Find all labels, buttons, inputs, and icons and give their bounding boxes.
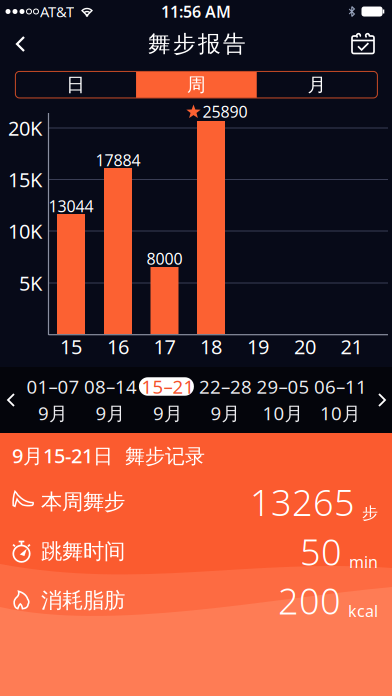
staticText: 本周舞步 [41,489,125,515]
staticText: 周 [187,73,206,96]
staticText: 10K [8,218,42,244]
staticText: 9月15-21日 舞步记录 [12,442,205,469]
staticText: 5K [19,270,42,296]
staticText: 跳舞时间 [41,538,125,565]
staticText: 21 [340,333,362,360]
staticText: 11:56 AM [161,1,231,22]
button[interactable]: 29–05 [254,367,311,433]
staticText: 9月 [153,401,183,425]
staticText: 22–28 [199,374,252,399]
staticText: 月 [307,73,326,96]
staticText: 200 [278,577,341,624]
staticText: 日 [66,73,85,96]
staticText: 步 [362,503,378,523]
button[interactable]: 15–21 [139,367,196,433]
staticText: 08–14 [84,374,137,399]
staticText: 18 [200,333,222,360]
staticText: min [349,551,378,572]
button[interactable]: 01–07 [24,367,81,433]
staticText: 9月 [95,401,125,425]
staticText: 8000 [146,248,182,269]
button[interactable]: Previous weeks [4,390,20,410]
staticText: 06–11 [314,374,367,399]
staticText: 10月 [262,401,303,425]
button[interactable]: 日 [17,71,135,98]
button[interactable]: 06–11 [312,367,369,433]
staticText: 20 [294,333,316,360]
staticText: 13265 [250,478,355,526]
staticText: 25890 [202,101,247,122]
staticText: 20K [8,115,42,141]
staticText: 消耗脂肪 [41,587,125,614]
staticText: 50 [300,528,342,575]
staticText: 17884 [95,149,140,171]
staticText: 29–05 [256,374,309,399]
button[interactable]: 月 [258,71,376,98]
staticText: 9月 [38,401,68,425]
staticText: 13044 [48,195,93,217]
staticText: 17 [153,333,175,360]
staticText: 舞步报告 [148,30,246,58]
staticText: AT&T [40,2,74,21]
staticText: 9月 [210,401,240,425]
staticText: kcal [348,600,378,621]
staticText: 15K [8,166,42,193]
staticText: 10月 [320,401,361,425]
button[interactable]: Back [10,30,44,58]
button[interactable]: 22–28 [197,367,254,433]
button[interactable]: 08–14 [82,367,139,433]
button[interactable]: 周 [136,71,257,98]
button[interactable]: Next weeks [373,390,389,410]
staticText: 15 [60,333,82,360]
staticText: 19 [247,333,269,360]
staticText: 01–07 [26,374,79,399]
button[interactable]: Calendar [346,29,380,59]
staticText: 16 [107,333,129,360]
staticText: 15–21 [141,374,194,399]
